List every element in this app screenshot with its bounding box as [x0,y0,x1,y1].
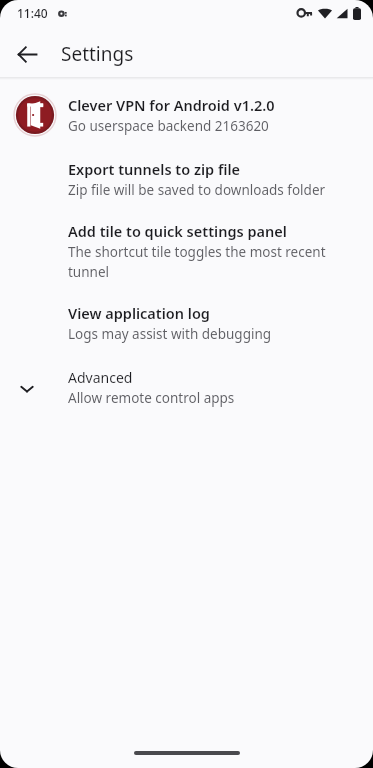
staticText: Allow remote control apps [68,389,235,407]
staticText: Advanced [68,368,133,387]
staticText: Zip file will be saved to downloads fold… [68,181,326,199]
button[interactable]: View application log [0,303,373,343]
staticText: Settings [61,41,134,67]
button[interactable]: Back [7,34,47,74]
staticText: Logs may assist with debugging [68,325,272,343]
staticText: Clever VPN for Android v1.2.0 [68,95,275,115]
button[interactable]: Advanced [0,368,373,407]
button[interactable]: Clever VPN for Android v1.2.0 [0,88,373,142]
button[interactable]: Add tile to quick settings panel [0,221,373,281]
staticText: 11:40 [17,5,48,21]
staticText: Add tile to quick settings panel [68,221,287,241]
staticText: The shortcut tile toggles the most recen… [68,243,333,281]
staticText: Go userspace backend 2163620 [68,117,269,135]
button[interactable]: Export tunnels to zip file [0,159,373,199]
staticText: View application log [68,303,210,323]
staticText: Export tunnels to zip file [68,159,240,179]
